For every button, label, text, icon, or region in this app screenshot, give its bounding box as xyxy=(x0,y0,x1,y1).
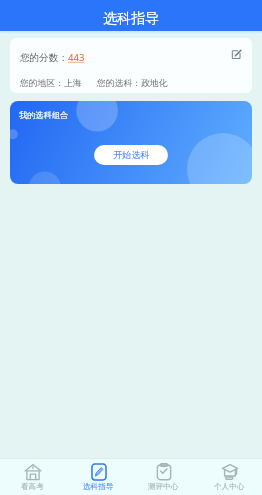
staticText: 个人中心 xyxy=(214,482,245,492)
button[interactable]: 看高考 xyxy=(0,459,65,495)
staticText: 我的选科组合 xyxy=(19,110,69,120)
button[interactable]: 开始选科 xyxy=(94,145,168,165)
button[interactable]: 个人中心 xyxy=(197,459,262,495)
button[interactable]: 选科指导 xyxy=(66,459,131,495)
staticText: 您的分数： xyxy=(20,52,68,64)
staticText: 看高考 xyxy=(21,482,44,492)
staticText: 443 xyxy=(68,51,85,64)
staticText: 选科指导 xyxy=(103,10,159,28)
staticText: 开始选科 xyxy=(113,149,150,161)
staticText: 您的选科：政地化 xyxy=(97,78,168,89)
staticText: 测评中心 xyxy=(148,482,179,492)
button[interactable]: 测评中心 xyxy=(131,459,196,495)
staticText: 选科指导 xyxy=(83,482,114,492)
button[interactable]: Edit score xyxy=(231,49,242,60)
staticText: 您的地区：上海 xyxy=(20,78,82,89)
